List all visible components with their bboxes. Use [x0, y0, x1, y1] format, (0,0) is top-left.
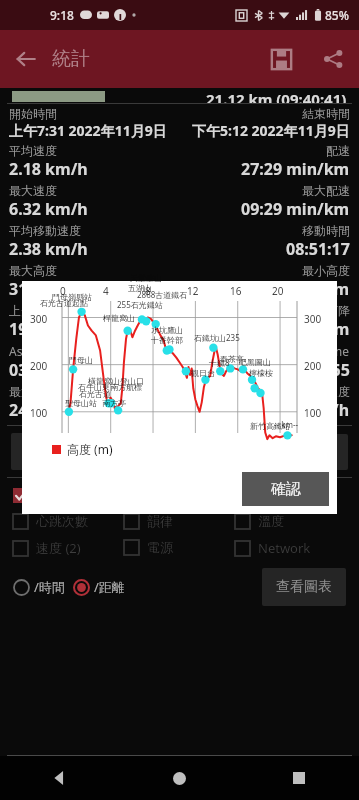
- button[interactable]: 一圈的距離 (1.00 KM): [11, 433, 178, 470]
- staticText: 聖母山站: [65, 398, 97, 408]
- staticText: 一圈的距離 (1.00 KM): [25, 442, 164, 461]
- staticText: -- km--: [274, 419, 299, 430]
- staticText: Descent time: [275, 343, 350, 359]
- staticText: 速度 (2): [36, 539, 81, 557]
- staticText: 最大上升速度: [9, 384, 81, 399]
- staticText: 200: [30, 359, 48, 373]
- staticText: 橫龍窩山登山口: [88, 376, 144, 386]
- staticText: 吧黑圖山: [239, 357, 271, 367]
- staticText: 100: [304, 406, 322, 420]
- staticText: 4: [103, 284, 119, 298]
- staticText: 石光古道: [79, 389, 111, 399]
- staticText: 開始時間: [9, 106, 57, 121]
- staticText: 2.18 km/h: [9, 158, 88, 180]
- staticText: 2868古道鐵石: [137, 289, 188, 300]
- staticText: 十番幹部: [151, 335, 183, 345]
- staticText: 天堂壁山: [130, 273, 162, 283]
- staticText: 2.38 km/h: [9, 238, 88, 260]
- staticText: Ascent time: [9, 343, 76, 359]
- button[interactable]: Save: [255, 33, 307, 85]
- staticText: 255石光鐵站: [117, 299, 163, 310]
- staticText: 0: [60, 284, 76, 298]
- staticText: 300: [304, 312, 322, 326]
- staticText: 12: [187, 284, 203, 298]
- staticText: 桿龍窩山: [103, 313, 135, 323]
- staticText: 檸檬桉: [249, 368, 273, 378]
- staticText: /時間: [34, 578, 65, 596]
- staticText: 最大配速: [302, 183, 350, 198]
- staticText: 電源: [147, 539, 173, 555]
- button[interactable]: 高度: [13, 482, 124, 508]
- staticText: 9:18: [50, 7, 74, 23]
- button[interactable]: /時間: [13, 574, 65, 600]
- staticText: 鬥母嶺縣站: [52, 292, 92, 302]
- staticText: 100: [30, 406, 48, 420]
- staticText: 242.24 m/h: [9, 399, 97, 421]
- button[interactable]: Recent apps: [239, 756, 359, 800]
- staticText: 20: [272, 284, 288, 298]
- button[interactable]: 坡度: [235, 482, 346, 508]
- staticText: 85%: [325, 7, 349, 23]
- staticText: 1903 m: [9, 318, 66, 340]
- staticText: /距離: [94, 578, 125, 596]
- staticText: 最小高度: [302, 263, 350, 278]
- button[interactable]: Home: [119, 756, 239, 800]
- button[interactable]: 溫度: [235, 508, 346, 534]
- staticText: 下降: [326, 303, 350, 318]
- staticText: 韻律: [147, 513, 173, 529]
- staticText: 300: [30, 312, 48, 326]
- staticText: 鬥母山: [69, 355, 93, 365]
- button[interactable]: Network: [235, 534, 346, 562]
- button[interactable]: 確認: [242, 472, 329, 506]
- button[interactable]: Share: [307, 33, 359, 85]
- button[interactable]: Back: [0, 33, 52, 85]
- button[interactable]: Back: [0, 756, 119, 800]
- staticText: 最大高度: [9, 263, 57, 278]
- staticText: 心跳次數: [36, 513, 88, 529]
- staticText: 觀日台: [191, 368, 215, 378]
- staticText: 結束時間: [302, 106, 350, 121]
- staticText: 石光古道起點: [40, 298, 88, 308]
- staticText: 31 m: [311, 278, 350, 300]
- staticText: 平均速度: [9, 143, 57, 158]
- staticText: 1940 m: [293, 318, 350, 340]
- button[interactable]: 電源: [124, 534, 235, 560]
- staticText: 平均移動速度: [9, 223, 81, 238]
- staticText: 196.48 m/h: [262, 399, 350, 421]
- staticText: 21.12 km (09:40:41): [206, 89, 347, 103]
- staticText: 五湖山: [128, 283, 152, 293]
- staticText: 石牛山東南方航標: [78, 382, 142, 392]
- staticText: 27:29 min/km: [241, 158, 350, 180]
- staticText: 6.32 km/h: [9, 198, 88, 220]
- staticText: 查看圖表: [276, 578, 332, 596]
- staticText: 配速: [326, 143, 350, 158]
- button[interactable]: 心跳次數: [13, 508, 124, 534]
- staticText: 8: [145, 284, 161, 298]
- staticText: 十鐵8: [209, 357, 230, 368]
- staticText: 石鐵坑山235: [194, 332, 240, 343]
- staticText: 奉茶亭: [220, 354, 244, 364]
- staticText: 高度 (m): [67, 441, 113, 457]
- staticText: 最大速度: [9, 183, 57, 198]
- button[interactable]: 查看圖表: [262, 568, 346, 606]
- button[interactable]: 韻律: [124, 508, 235, 534]
- staticText: 下午5:12 2022年11月9日: [192, 121, 350, 140]
- staticText: 新竹高鐵站: [250, 421, 290, 431]
- staticText: 09:29 min/km: [241, 198, 350, 220]
- staticText: 08:51:17: [286, 238, 350, 260]
- staticText: 水坑鷹山: [151, 325, 183, 335]
- staticText: 最大下降速度: [278, 384, 350, 399]
- button[interactable]: /距離: [73, 574, 125, 600]
- staticText: Network: [258, 539, 311, 557]
- staticText: 上升: [9, 303, 33, 318]
- staticText: 03:12:55: [286, 359, 350, 381]
- staticText: 16: [230, 284, 246, 298]
- button[interactable]: 詳細: [276, 434, 348, 470]
- staticText: 坡度: [258, 487, 284, 503]
- staticText: 確認: [271, 480, 301, 499]
- button[interactable]: 速度 (2): [13, 534, 124, 562]
